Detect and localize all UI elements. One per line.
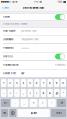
staticText: 9 <box>56 81 58 85</box>
staticText: you.server.mail <box>21 29 37 32</box>
staticText: Server Port <box>3 72 16 75</box>
button[interactable]: ' <box>48 99 56 107</box>
staticText: ! <box>42 101 43 105</box>
button[interactable]: Authentication <box>0 61 67 69</box>
button[interactable]: & <box>47 89 53 97</box>
staticText: $ <box>42 91 44 95</box>
button[interactable]: 2 <box>8 79 13 87</box>
button[interactable]: Password <box>0 44 67 52</box>
staticText: •••••••• <box>21 46 29 49</box>
staticText: Use SSL <box>3 55 13 58</box>
button[interactable]: Next keyboard <box>9 109 16 117</box>
staticText: 5 <box>29 81 31 85</box>
button[interactable]: ; <box>21 89 26 97</box>
staticText: 3 <box>16 81 18 85</box>
button[interactable]: space <box>17 109 50 117</box>
button[interactable]: Username <box>0 35 67 43</box>
staticText: : <box>16 91 17 95</box>
button[interactable]: : <box>14 89 20 97</box>
button[interactable]: return <box>51 109 66 117</box>
staticText: - <box>3 91 4 95</box>
staticText: / <box>10 91 11 95</box>
button[interactable]: ! <box>39 99 47 107</box>
button[interactable]: 0 <box>61 79 66 87</box>
button[interactable]: ) <box>34 89 39 97</box>
staticText: OUTGOING MAIL SERVER <box>3 23 27 25</box>
button[interactable]: #+= <box>1 99 10 107</box>
staticText: 100% <box>57 1 63 3</box>
staticText: 1 <box>3 81 4 85</box>
staticText: defines.server.mail <box>22 6 44 9</box>
button[interactable]: . <box>11 99 19 107</box>
button[interactable]: 7 <box>41 79 46 87</box>
staticText: Host Name <box>3 29 15 32</box>
staticText: info@server.mail <box>21 38 39 41</box>
staticText: @ <box>56 91 58 95</box>
staticText: ; <box>23 91 24 95</box>
button[interactable]: ( <box>27 89 33 97</box>
staticText: Password <box>3 46 13 49</box>
staticText: 7 <box>43 81 44 85</box>
staticText: Password <box>55 63 65 66</box>
button[interactable]: Server <box>0 13 67 21</box>
staticText: ●●●●○ Carrier <box>1 1 19 3</box>
button[interactable]: 3 <box>14 79 20 87</box>
button[interactable]: 5 <box>27 79 33 87</box>
staticText: . <box>15 101 16 105</box>
button[interactable]: ? <box>29 99 37 107</box>
staticText: 4 <box>23 81 25 85</box>
staticText: , <box>24 101 25 105</box>
staticText: ⌫ <box>60 102 62 104</box>
staticText: ? <box>33 101 34 105</box>
staticText: 8 <box>49 81 51 85</box>
staticText: ABC <box>3 112 6 114</box>
staticText: return <box>55 112 61 114</box>
staticText: 9:41 AM <box>34 1 42 3</box>
button[interactable]: " <box>61 89 66 97</box>
button[interactable]: $ <box>41 89 46 97</box>
button[interactable]: Use SSL <box>0 52 67 60</box>
button[interactable]: 4 <box>21 79 26 87</box>
staticText: ' <box>51 101 52 105</box>
button[interactable]: - <box>1 89 6 97</box>
button[interactable]: 8 <box>47 79 53 87</box>
staticText: 6 <box>36 81 38 85</box>
button[interactable]: 9 <box>54 79 59 87</box>
button[interactable]: @ <box>54 89 59 97</box>
staticText: 2 <box>9 81 11 85</box>
staticText: #+= <box>4 102 7 104</box>
button[interactable]: Server Port <box>0 69 67 77</box>
staticText: ) <box>36 91 37 95</box>
staticText: Authentication <box>3 63 18 66</box>
staticText: Username <box>3 38 13 41</box>
staticText: " <box>63 91 64 95</box>
button[interactable]: ABC <box>1 109 8 117</box>
staticText: 0 <box>62 81 64 85</box>
button[interactable]: , <box>20 99 28 107</box>
staticText: 587 <box>21 72 24 75</box>
button[interactable]: 1 <box>1 79 6 87</box>
staticText: & <box>49 91 51 95</box>
button[interactable]: Cancel <box>0 4 11 11</box>
button[interactable]: Host Name <box>0 27 67 35</box>
staticText: space <box>31 111 37 115</box>
button[interactable]: 6 <box>34 79 39 87</box>
staticText: Cancel <box>2 6 9 9</box>
staticText: ( <box>30 91 31 95</box>
button[interactable]: / <box>8 89 13 97</box>
button[interactable]: ⌫ <box>57 99 66 107</box>
staticText: Server <box>3 15 10 18</box>
